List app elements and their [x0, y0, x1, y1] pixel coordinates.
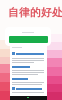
staticText: 自律的好处: [8, 6, 62, 19]
